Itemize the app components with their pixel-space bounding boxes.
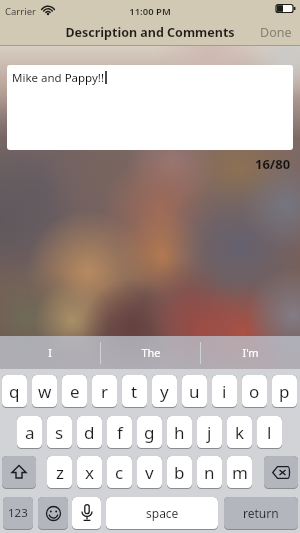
button[interactable] — [264, 456, 298, 489]
button[interactable]: The — [101, 336, 200, 369]
button[interactable]: z — [47, 456, 72, 489]
staticText: q — [9, 380, 20, 403]
button[interactable] — [38, 497, 68, 530]
staticText: 11:00 PM — [0, 5, 300, 18]
staticText: g — [144, 421, 155, 444]
button[interactable]: j — [197, 416, 222, 449]
button[interactable]: q — [2, 375, 27, 408]
button[interactable]: u — [182, 375, 207, 408]
button[interactable]: k — [227, 416, 252, 449]
staticText: Carrier — [5, 5, 36, 18]
button[interactable]: c — [107, 456, 132, 489]
staticText: h — [174, 421, 185, 444]
staticText: 16/80 — [255, 155, 291, 173]
staticText: The — [141, 345, 161, 360]
button[interactable]: g — [137, 416, 162, 449]
staticText: b — [174, 461, 185, 484]
staticText: i — [222, 380, 227, 403]
staticText: w — [38, 380, 52, 403]
staticText: l — [267, 421, 272, 444]
button[interactable] — [2, 456, 36, 489]
button[interactable]: y — [152, 375, 177, 408]
button[interactable]: m — [227, 456, 252, 489]
staticText: Description and Comments — [0, 24, 300, 41]
button[interactable]: o — [242, 375, 267, 408]
button[interactable]: I — [0, 336, 100, 369]
staticText: u — [189, 380, 200, 403]
staticText: I — [48, 345, 52, 360]
button[interactable]: t — [122, 375, 147, 408]
button[interactable]: b — [167, 456, 192, 489]
button[interactable]: h — [167, 416, 192, 449]
button[interactable]: r — [92, 375, 117, 408]
staticText: space — [146, 505, 179, 521]
button[interactable] — [72, 497, 101, 530]
button[interactable]: Mike and Pappy!! — [7, 65, 293, 150]
button[interactable]: 123 — [3, 497, 33, 530]
button[interactable]: x — [77, 456, 102, 489]
staticText: 123 — [8, 505, 28, 521]
staticText: c — [115, 461, 124, 484]
staticText: p — [279, 380, 290, 403]
button[interactable]: a — [17, 416, 42, 449]
staticText: x — [85, 461, 94, 484]
staticText: t — [131, 380, 138, 403]
staticText: a — [25, 421, 35, 444]
button[interactable]: p — [272, 375, 297, 408]
staticText: n — [204, 461, 215, 484]
button[interactable]: f — [107, 416, 132, 449]
staticText: d — [84, 421, 95, 444]
staticText: e — [70, 380, 80, 403]
staticText: j — [207, 421, 212, 444]
staticText: f — [117, 421, 123, 444]
staticText: z — [56, 461, 64, 484]
staticText: return — [243, 505, 279, 521]
staticText: I'm — [242, 345, 259, 360]
button[interactable]: I'm — [201, 336, 300, 369]
staticText: Done — [260, 24, 292, 41]
staticText: r — [101, 380, 109, 403]
button[interactable]: s — [47, 416, 72, 449]
button[interactable]: space — [106, 497, 218, 530]
staticText: v — [145, 461, 154, 484]
button[interactable]: Done — [256, 20, 296, 44]
button[interactable]: i — [212, 375, 237, 408]
button[interactable]: l — [257, 416, 282, 449]
button[interactable]: d — [77, 416, 102, 449]
button[interactable]: e — [62, 375, 87, 408]
button[interactable]: n — [197, 456, 222, 489]
staticText: y — [160, 380, 169, 403]
button[interactable]: v — [137, 456, 162, 489]
staticText: s — [55, 421, 64, 444]
button[interactable]: w — [32, 375, 57, 408]
staticText: m — [232, 461, 248, 484]
staticText: k — [235, 421, 245, 444]
staticText: o — [249, 380, 260, 403]
staticText: Mike and Pappy!! — [12, 70, 105, 86]
button[interactable]: return — [224, 497, 298, 530]
